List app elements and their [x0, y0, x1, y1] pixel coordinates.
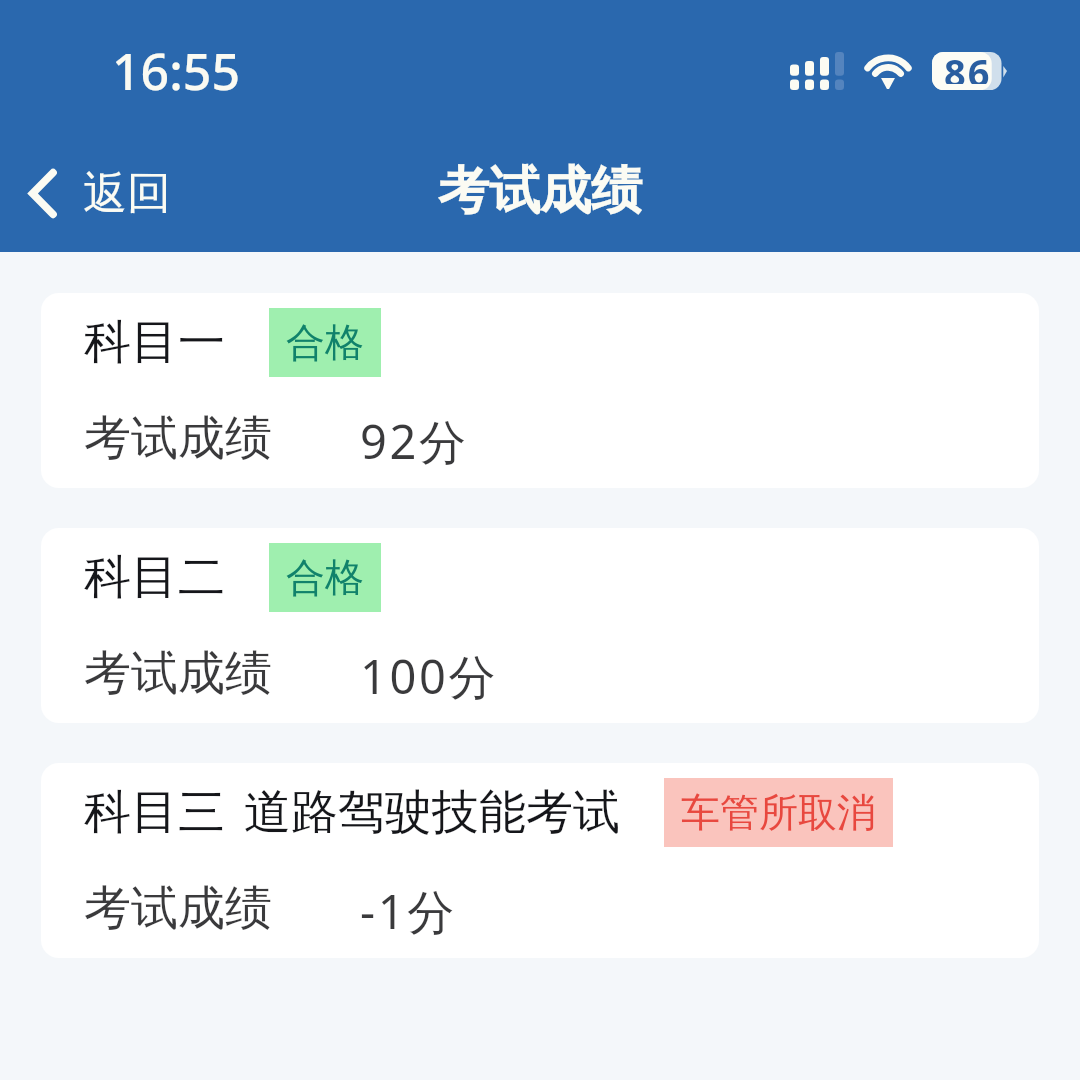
staticText: 考试成绩: [84, 879, 272, 938]
button[interactable]: 返回: [0, 152, 197, 235]
staticText: 道路驾驶技能考试: [244, 783, 620, 842]
other: 返回: [27, 168, 56, 219]
button[interactable]: 科目一: [41, 293, 1039, 488]
staticText: 100分: [360, 644, 499, 708]
staticText: 16:55: [112, 37, 240, 105]
staticText: 合格: [286, 553, 364, 602]
staticText: 考试成绩: [84, 644, 272, 703]
staticText: 考试成绩: [438, 159, 642, 223]
button[interactable]: 科目三: [41, 763, 1039, 958]
staticText: 合格: [286, 318, 364, 367]
staticText: 科目三: [84, 783, 225, 842]
staticText: 车管所取消: [681, 788, 876, 837]
staticText: 92分: [360, 409, 469, 473]
staticText: 考试成绩: [84, 409, 272, 468]
staticText: 科目二: [84, 548, 225, 607]
staticText: -1分: [360, 879, 457, 943]
button[interactable]: 科目二: [41, 528, 1039, 723]
staticText: 返回: [83, 166, 171, 221]
staticText: 科目一: [84, 313, 225, 372]
staticText: 86: [944, 46, 992, 84]
